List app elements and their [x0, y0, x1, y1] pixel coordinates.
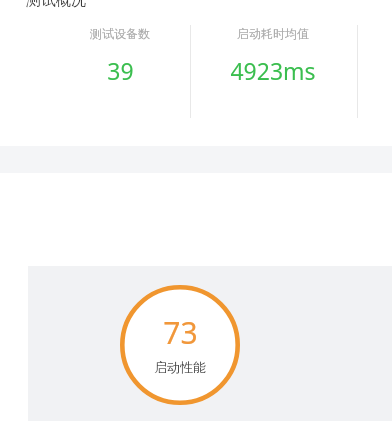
button[interactable]: 测试设备数 — [45, 26, 195, 98]
staticText: 测试设备数 — [90, 26, 150, 41]
staticText: 39 — [107, 55, 134, 86]
staticText: 73 — [163, 312, 198, 353]
button[interactable]: 启动耗时均值 — [198, 26, 348, 98]
staticText: 测试概况 — [26, 0, 86, 10]
button[interactable]: 启动性能 评分 73 — [118, 283, 242, 407]
button[interactable] — [28, 266, 392, 421]
staticText: 启动耗时均值 — [237, 26, 309, 41]
staticText: 启动性能 — [154, 359, 206, 375]
button[interactable]: 测试概况 — [26, 0, 86, 10]
staticText: 4923ms — [230, 55, 316, 86]
